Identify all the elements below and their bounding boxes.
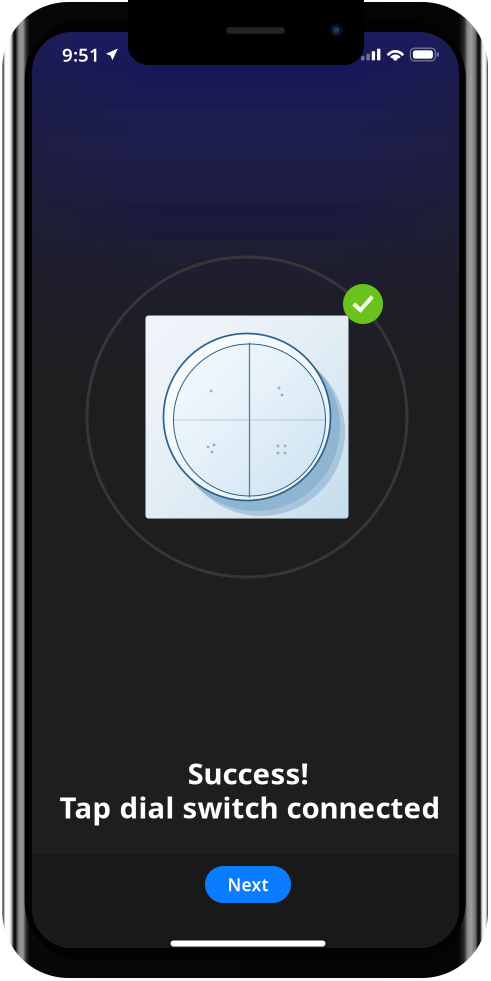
staticText: Next xyxy=(227,873,268,896)
staticText: Success! xyxy=(187,753,308,792)
staticText: 9:51 xyxy=(62,42,100,67)
button[interactable]: Next xyxy=(205,866,291,903)
staticText: Tap dial switch connected xyxy=(59,787,440,826)
